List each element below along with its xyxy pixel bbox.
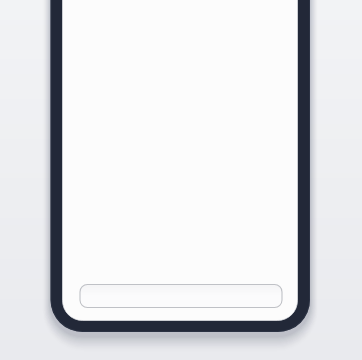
- button[interactable]: Search field: [0, 0, 362, 360]
- other: Text input field: [0, 0, 362, 360]
